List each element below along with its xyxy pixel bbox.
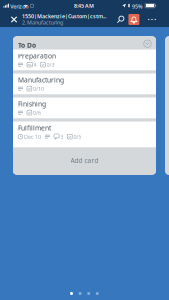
button[interactable]: More options	[145, 12, 159, 27]
staticText: 95%	[132, 3, 143, 10]
staticText: 0/6	[33, 109, 41, 116]
button[interactable]: Fulfillment	[13, 121, 156, 147]
staticText: To Do	[18, 41, 36, 50]
button[interactable]: Collapse list	[143, 39, 152, 48]
staticText: 3	[60, 133, 63, 140]
staticText: 8:45 AM	[74, 2, 94, 9]
staticText: 1550|Mackenzie|Custom|cstm...	[22, 13, 106, 20]
staticText: Dec 10	[24, 133, 41, 140]
staticText: 4	[34, 61, 37, 68]
staticText: Fulfillment	[18, 123, 51, 132]
staticText: 0/10	[33, 85, 44, 92]
button[interactable]: Add card	[13, 147, 156, 173]
button[interactable]: Search	[114, 12, 127, 27]
staticText: Verizon	[10, 3, 28, 10]
button[interactable]: Manufacturing	[13, 73, 156, 94]
staticText: 2. Manufacturing	[22, 19, 63, 26]
staticText: 0/5	[73, 133, 81, 140]
staticText: Preparation	[18, 51, 56, 60]
button[interactable]: Notifications	[128, 14, 139, 25]
button[interactable]: Finishing	[13, 97, 156, 118]
staticText: Finishing	[18, 99, 46, 108]
staticText: Add card	[70, 156, 98, 165]
staticText: 0/3	[47, 61, 55, 68]
button[interactable]: Close	[7, 12, 21, 27]
staticText: Manufacturing	[18, 75, 64, 84]
button[interactable]: Preparation	[13, 49, 156, 70]
